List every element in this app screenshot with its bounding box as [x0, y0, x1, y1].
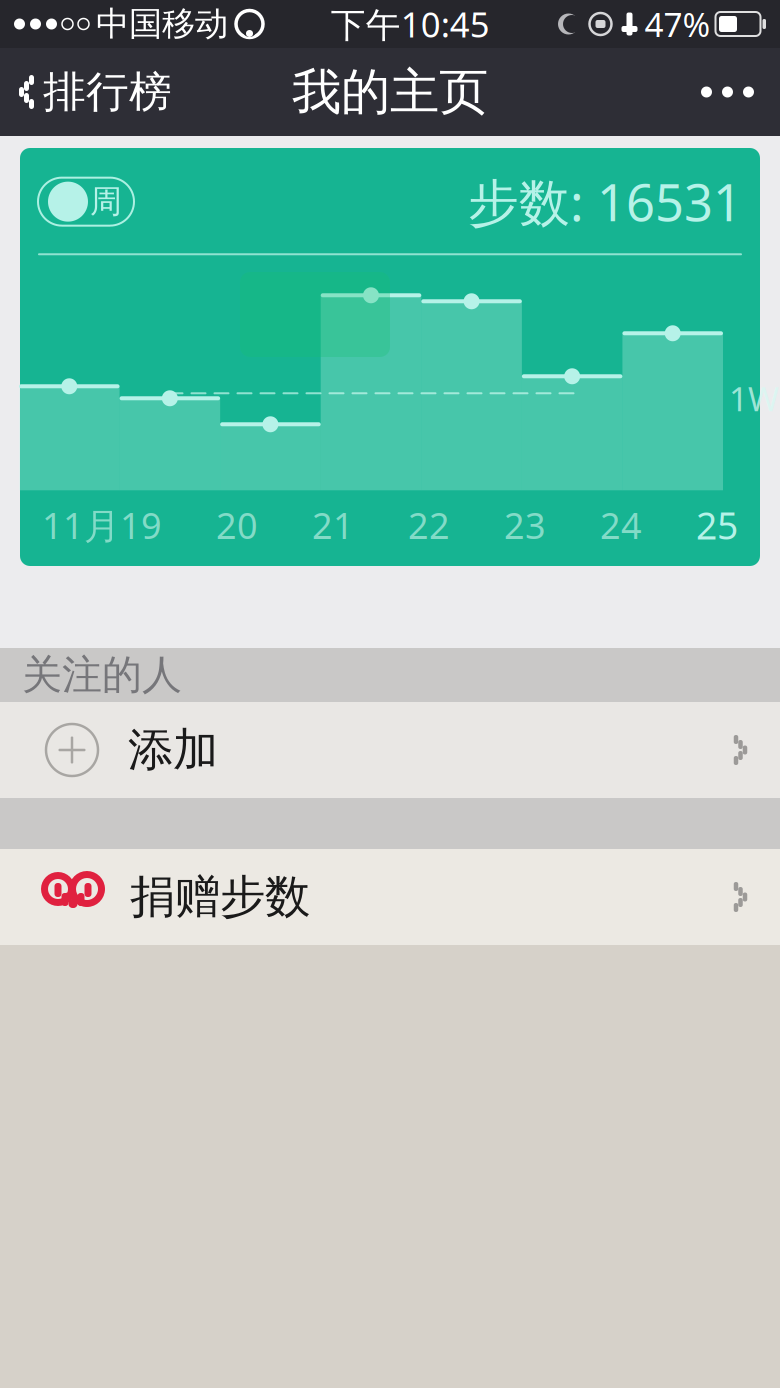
staticText: 我的主页: [292, 62, 488, 122]
staticText: 步数: 16531: [468, 168, 742, 235]
staticText: 11月19: [42, 501, 162, 549]
staticText: 中国移动: [96, 3, 228, 44]
staticText: 1W: [729, 376, 779, 421]
staticText: 排行榜: [43, 66, 172, 118]
staticText: 25: [696, 500, 738, 550]
staticText: 捐赠步数: [130, 869, 310, 925]
staticText: 周: [90, 182, 122, 221]
button[interactable]: More: [675, 48, 780, 136]
staticText: 22: [408, 501, 450, 549]
staticText: 添加: [128, 722, 218, 778]
staticText: 20: [216, 501, 258, 549]
staticText: 关注的人: [22, 650, 182, 699]
staticText: 23: [504, 501, 546, 549]
staticText: 47%: [644, 2, 710, 46]
staticText: 24: [600, 501, 642, 549]
button[interactable]: 捐赠步数: [0, 849, 780, 945]
button[interactable]: 排行榜: [0, 48, 188, 136]
staticText: 下午10:45: [331, 1, 490, 47]
button[interactable]: 周: [38, 178, 134, 226]
button[interactable]: 添加: [0, 702, 780, 798]
staticText: 21: [312, 501, 354, 549]
